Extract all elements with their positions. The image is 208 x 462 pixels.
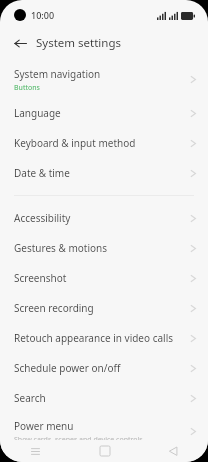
button[interactable]: Retouch appearance in video calls <box>0 323 208 353</box>
staticText: Screenshot <box>14 271 67 285</box>
staticText: Power menu <box>14 419 74 433</box>
button[interactable]: Screen recording <box>0 293 208 323</box>
button[interactable]: Gestures & motions <box>0 233 208 263</box>
button[interactable]: Back <box>139 446 208 456</box>
button[interactable]: Search <box>0 383 208 413</box>
button[interactable]: Recent apps <box>0 446 70 457</box>
button[interactable]: Power menu <box>0 413 208 450</box>
staticText: 10:00 <box>31 9 55 21</box>
button[interactable]: Language <box>0 98 208 128</box>
button[interactable]: Date & time <box>0 158 208 188</box>
staticText: Screen recording <box>14 301 94 315</box>
staticText: Schedule power on/off <box>14 361 121 375</box>
staticText: Gestures & motions <box>14 241 107 255</box>
button[interactable]: Screenshot <box>0 263 208 293</box>
button[interactable]: Accessibility <box>0 203 208 233</box>
button[interactable]: Back <box>10 33 30 53</box>
staticText: Accessibility <box>14 211 71 225</box>
staticText: System navigation <box>14 67 101 81</box>
staticText: Date & time <box>14 166 70 180</box>
button[interactable]: Schedule power on/off <box>0 353 208 383</box>
button[interactable]: Keyboard & input method <box>0 128 208 158</box>
staticText: Retouch appearance in video calls <box>14 331 174 345</box>
staticText: System settings <box>36 35 122 51</box>
staticText: Show cards, scenes and device controls <box>14 435 143 445</box>
staticText: Keyboard & input method <box>14 136 136 150</box>
button[interactable]: System navigation <box>0 61 208 98</box>
staticText: Language <box>14 106 61 120</box>
button[interactable]: Home <box>70 446 139 456</box>
staticText: Search <box>14 391 46 405</box>
staticText: Buttons <box>14 83 40 93</box>
